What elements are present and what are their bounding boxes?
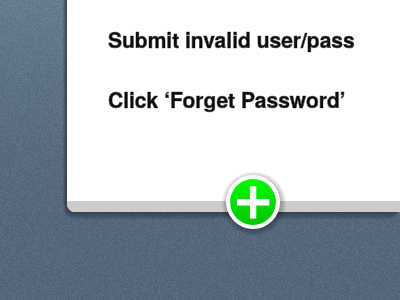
staticText: Submit invalid user/pass	[108, 24, 355, 54]
staticText: Submit invalid user/pass	[108, 24, 355, 54]
button[interactable]: Submit invalid user/pass	[67, 24, 400, 84]
button[interactable]: Click ‘Forget Password’	[67, 84, 400, 144]
staticText: Click ‘Forget Password’	[108, 84, 346, 114]
staticText: Click ‘Forget Password’	[108, 84, 346, 114]
button[interactable]: Add	[223, 172, 283, 232]
